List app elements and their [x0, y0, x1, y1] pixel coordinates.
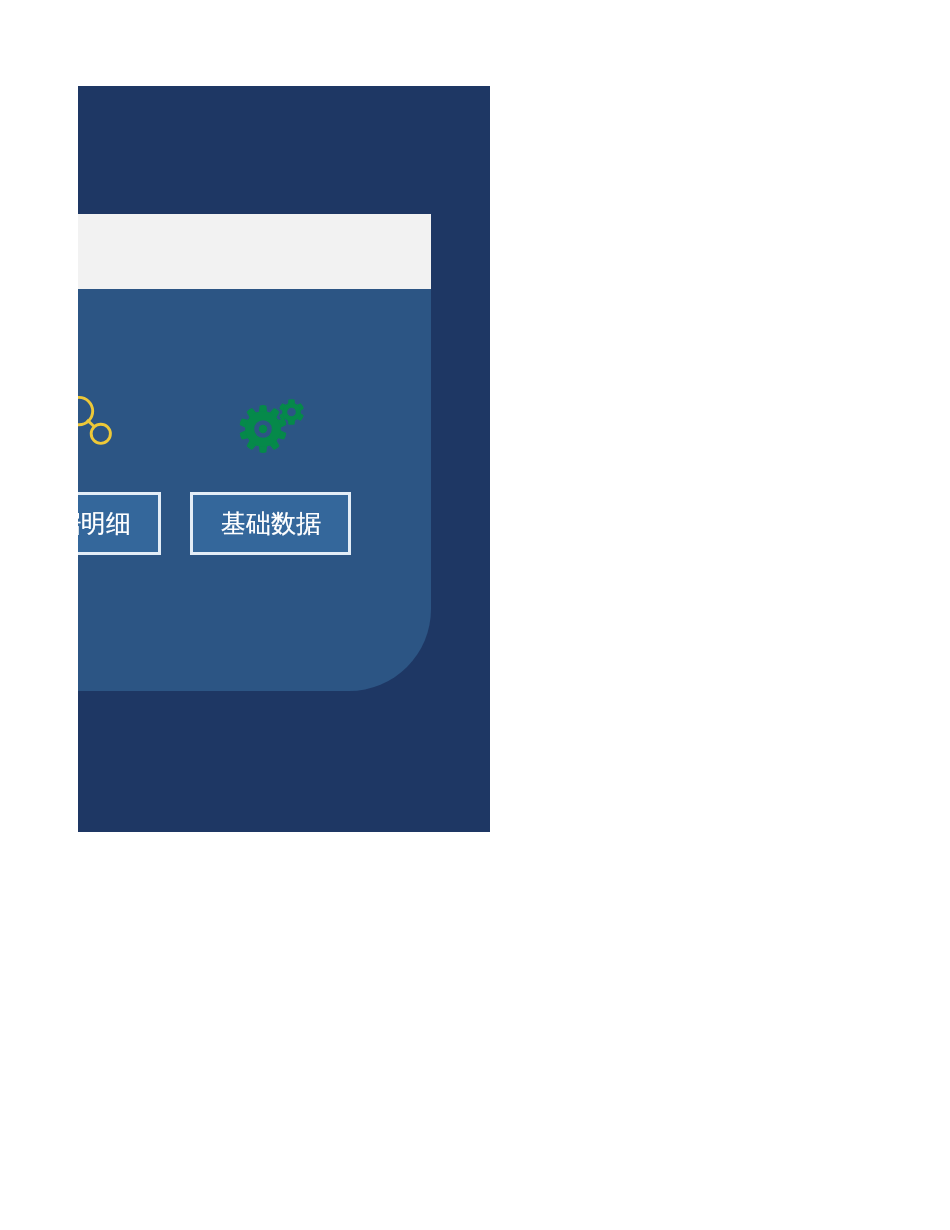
button[interactable]: 数据明细 [78, 492, 161, 555]
button[interactable]: Settings [226, 373, 326, 473]
button[interactable]: Relationship map [78, 369, 129, 461]
button[interactable]: Search [78, 214, 431, 290]
staticText: 基础数据 [221, 508, 321, 539]
button[interactable]: 基础数据 [190, 492, 351, 555]
staticText: 数据明细 [78, 508, 131, 539]
